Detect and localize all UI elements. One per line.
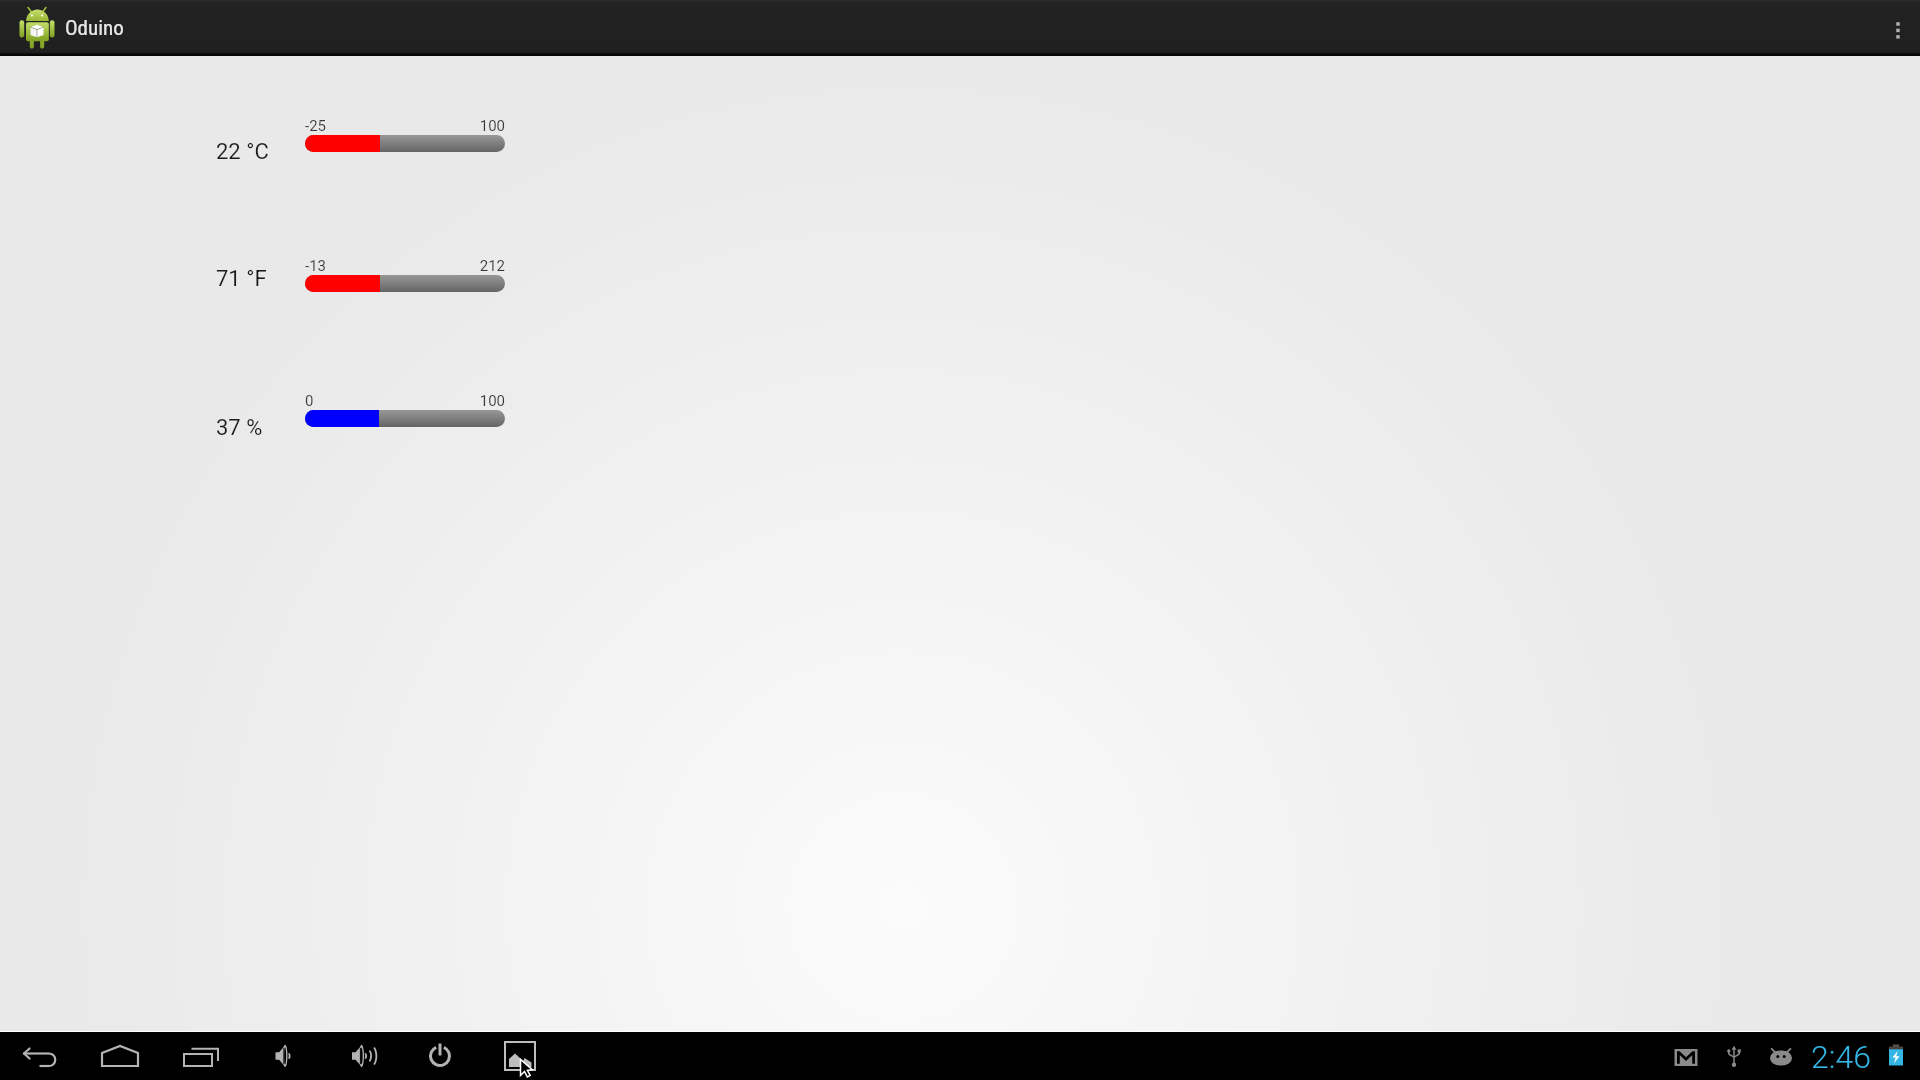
button[interactable]: More options — [1876, 0, 1920, 56]
button[interactable]: 71 °F — [305, 275, 505, 292]
button[interactable]: Back — [4, 1032, 76, 1080]
staticText: -25 — [305, 117, 327, 135]
button[interactable]: Recent apps — [164, 1032, 236, 1080]
staticText: 22 °C — [216, 139, 269, 165]
button[interactable]: 22 °C — [305, 135, 505, 152]
staticText: -13 — [305, 257, 327, 275]
other: USB connected — [1717, 1032, 1751, 1080]
button[interactable]: Volume down — [246, 1032, 318, 1080]
staticText: 100 — [385, 117, 505, 135]
staticText: 71 °F — [216, 266, 267, 292]
button[interactable]: Screenshot — [484, 1032, 556, 1080]
staticText: 2:46 — [1811, 1038, 1871, 1076]
staticText: 0 — [305, 392, 314, 410]
staticText: 100 — [385, 392, 505, 410]
staticText: 37 % — [216, 415, 263, 441]
other: Battery charging — [1879, 1032, 1913, 1080]
staticText: 212 — [385, 257, 505, 275]
button[interactable]: 37 % — [305, 410, 505, 427]
button[interactable]: Power — [404, 1032, 476, 1080]
other: Email — [1669, 1032, 1703, 1080]
other: Android system — [1764, 1032, 1798, 1080]
button[interactable]: Oduino — [0, 0, 136, 56]
button[interactable]: Volume up — [327, 1032, 399, 1080]
button[interactable]: Home — [84, 1032, 156, 1080]
staticText: Oduino — [65, 16, 124, 41]
